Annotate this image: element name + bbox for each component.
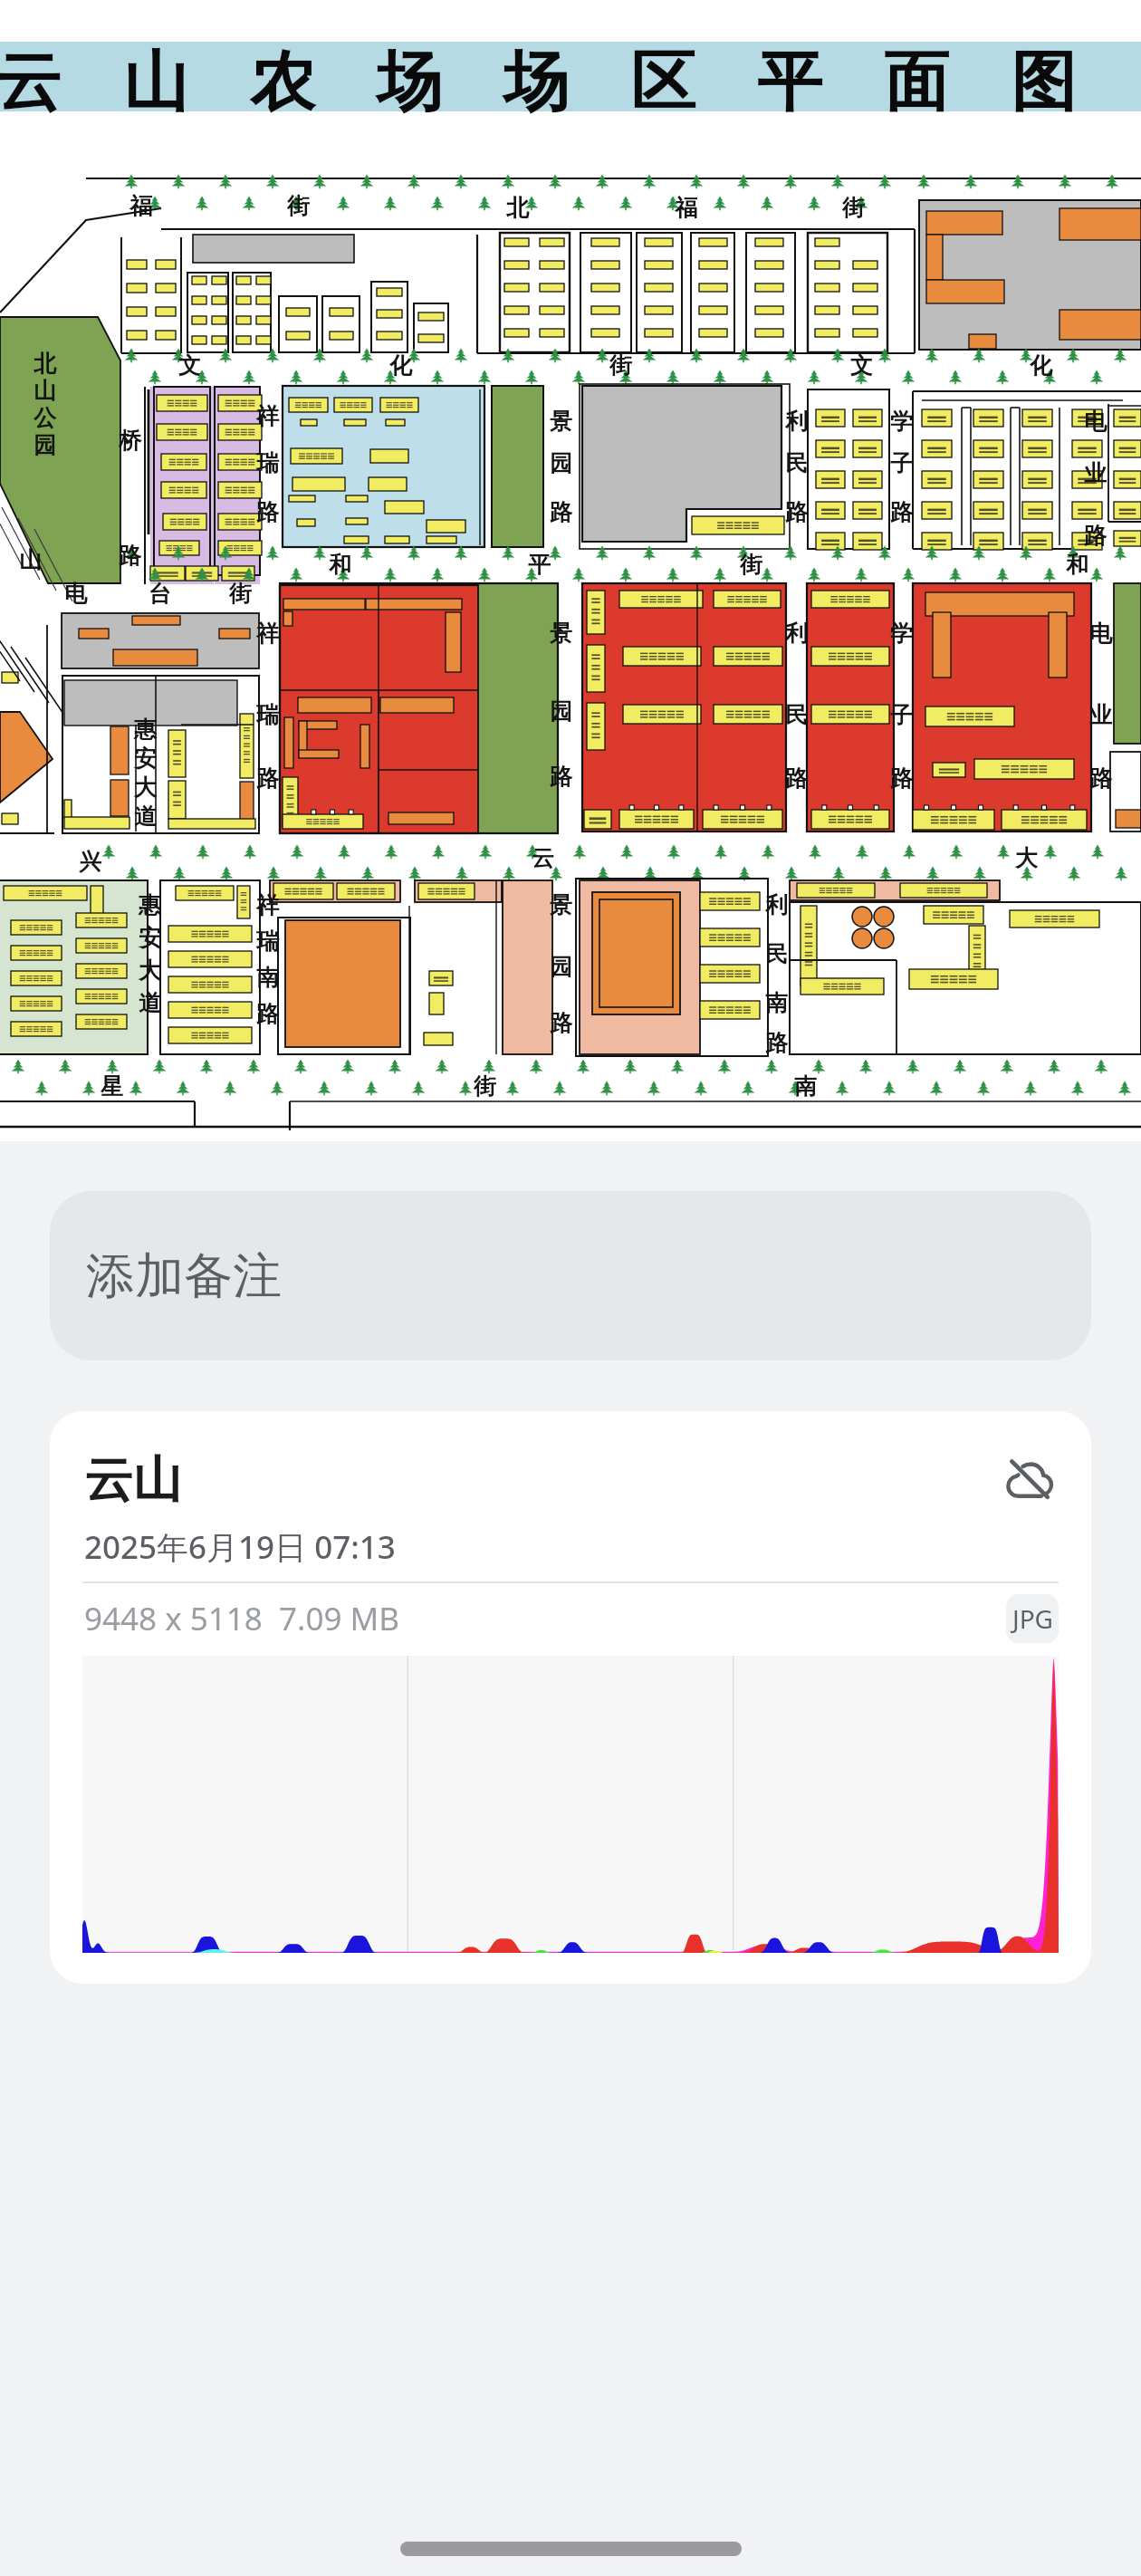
staticText: 街 [287, 192, 310, 220]
button[interactable]: JPG [1006, 1594, 1059, 1643]
button[interactable]: 添加备注 [50, 1191, 1091, 1360]
staticText: 民 [785, 449, 808, 477]
staticText: 云山 [84, 1449, 182, 1511]
staticText: 南 [765, 989, 788, 1017]
staticText: 化 [389, 351, 412, 380]
staticText: 场 [377, 42, 442, 124]
staticText: 民 [765, 940, 788, 968]
staticText: 平 [757, 42, 822, 124]
staticText: 利 [785, 408, 808, 436]
staticText: 道 [139, 989, 161, 1017]
staticText: 福 [129, 192, 152, 220]
staticText: 利 [765, 891, 788, 919]
staticText: 化 [1030, 351, 1052, 380]
staticText: 街 [474, 1072, 496, 1101]
staticText: 民 [785, 701, 808, 729]
staticText: 业 [1084, 459, 1107, 487]
staticText: 桥 [119, 427, 141, 455]
staticText: 祥 [256, 402, 279, 430]
staticText: 山 [19, 546, 42, 574]
staticText: 惠 [139, 891, 161, 919]
staticText: 园 [550, 953, 572, 981]
staticText: 学 [890, 408, 913, 436]
staticText: 路 [1089, 764, 1112, 793]
staticText: 和 [1066, 551, 1088, 579]
staticText: 面 [884, 42, 949, 124]
staticText: 南 [794, 1072, 817, 1101]
staticText: 瑞 [256, 928, 279, 956]
button[interactable]: Not backed up to cloud [999, 1450, 1059, 1510]
staticText: 福 [675, 194, 697, 222]
staticText: 子 [890, 449, 913, 477]
staticText: 园 [34, 431, 56, 459]
staticText: 区 [630, 42, 695, 124]
staticText: 大 [1015, 844, 1038, 872]
staticText: 街 [229, 580, 252, 608]
staticText: 电 [64, 580, 87, 608]
staticText: JPG [1012, 1601, 1053, 1636]
staticText: 公 [34, 404, 56, 432]
staticText: 和 [329, 551, 351, 579]
staticText: 路 [890, 764, 913, 793]
staticText: 北 [34, 350, 56, 378]
staticText: 园 [550, 697, 572, 726]
staticText: 惠 [134, 716, 157, 744]
staticText: 图 [1011, 42, 1076, 124]
staticText: 云 [532, 844, 554, 872]
staticText: 平 [528, 551, 551, 579]
staticText: 星 [101, 1072, 123, 1101]
staticText: 文 [850, 351, 873, 380]
staticText: 电 [1089, 620, 1112, 648]
button[interactable]: 云山 [50, 1411, 1091, 1984]
staticText: 山 [34, 377, 56, 405]
staticText: 大 [139, 956, 161, 985]
staticText: 场 [503, 42, 569, 124]
staticText: 路 [119, 542, 141, 570]
staticText: 景 [550, 620, 572, 648]
staticText: 路 [550, 498, 572, 526]
staticText: 路 [785, 764, 808, 793]
staticText: 景 [550, 891, 572, 919]
staticText: 电 [1084, 408, 1107, 436]
staticText: 子 [890, 701, 913, 729]
staticText: 路 [1084, 522, 1107, 550]
staticText: 云 [0, 42, 62, 124]
staticText: 景 [550, 408, 572, 436]
staticText: 路 [550, 763, 572, 791]
staticText: 南 [256, 964, 279, 992]
staticText: 街 [740, 551, 762, 579]
staticText: 业 [1089, 701, 1112, 729]
staticText: 9448 x 5118 7.09 MB [84, 1597, 400, 1640]
staticText: 瑞 [256, 701, 279, 729]
staticText: 北 [506, 194, 529, 222]
staticText: 路 [550, 1009, 572, 1037]
staticText: 路 [765, 1029, 788, 1057]
staticText: 祥 [256, 891, 279, 919]
staticText: 兴 [79, 848, 101, 876]
staticText: 路 [256, 764, 279, 793]
staticText: 2025年6月19日 07:13 [84, 1525, 396, 1569]
staticText: 园 [550, 449, 572, 477]
staticText: 添加备注 [86, 1245, 282, 1307]
staticText: 街 [842, 194, 865, 222]
button[interactable]: Photo [0, 0, 1141, 1141]
staticText: 台 [149, 580, 171, 608]
staticText: 大 [134, 774, 157, 802]
staticText: 街 [609, 351, 632, 380]
staticText: 文 [178, 351, 201, 380]
staticText: 安 [139, 924, 161, 952]
staticText: 路 [890, 498, 913, 526]
staticText: 道 [134, 803, 157, 831]
staticText: 学 [890, 620, 913, 648]
staticText: 路 [785, 498, 808, 526]
staticText: 安 [134, 745, 157, 773]
staticText: 农 [250, 42, 315, 124]
staticText: 瑞 [256, 449, 279, 477]
staticText: 利 [785, 620, 808, 648]
staticText: 路 [256, 1000, 279, 1028]
staticText: 山 [123, 42, 188, 124]
staticText: 路 [256, 498, 279, 526]
staticText: 祥 [256, 620, 279, 648]
